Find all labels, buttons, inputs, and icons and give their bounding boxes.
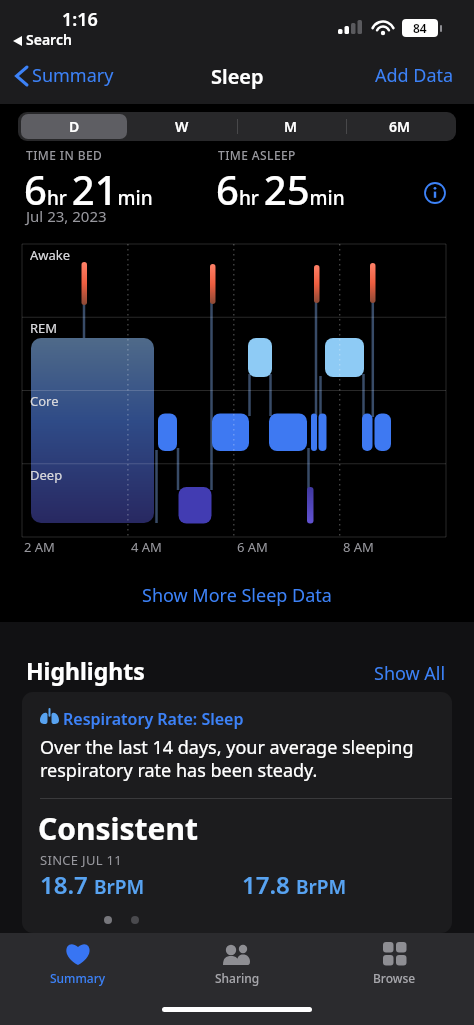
staticText: 17.8 BrPM [242, 868, 347, 901]
button[interactable]: M [237, 114, 344, 139]
staticText: W [175, 117, 189, 136]
staticText: Over the last 14 days, your average slee… [40, 735, 452, 783]
staticText: Deep [30, 466, 63, 484]
staticText: Jul 23, 2023 [26, 206, 107, 226]
staticText: 4 AM [131, 538, 162, 556]
staticText: M [284, 117, 298, 136]
staticText: 2 AM [24, 538, 55, 556]
staticText: Summary [50, 970, 106, 986]
staticText: 6hr 25min [216, 162, 345, 216]
staticText: Sleep [211, 63, 264, 90]
staticText: Add Data [375, 63, 454, 88]
button[interactable]: Show More Sleep Data [0, 583, 474, 608]
button[interactable]: D [21, 114, 127, 139]
button[interactable]: Browse [346, 936, 442, 996]
button[interactable]: Sharing [189, 936, 285, 996]
staticText: Core [30, 392, 59, 410]
button[interactable]: W [129, 114, 235, 139]
staticText: SINCE JUL 11 [40, 851, 122, 869]
button[interactable]: Show All [374, 661, 446, 686]
staticText: 8 AM [343, 538, 374, 556]
staticText: Summary [32, 63, 114, 88]
staticText: Consistent [38, 808, 199, 849]
button[interactable] [424, 182, 446, 204]
staticText: Show More Sleep Data [142, 583, 332, 608]
button[interactable]: 6M [346, 114, 453, 139]
button[interactable]: Summary [32, 63, 114, 88]
staticText: 6 AM [237, 538, 268, 556]
button[interactable] [15, 66, 27, 86]
staticText: Browse [373, 970, 416, 986]
staticText: 84 [413, 20, 427, 36]
staticText: 6hr 21min [24, 162, 153, 216]
button[interactable]: Summary [30, 936, 126, 996]
staticText: Highlights [26, 655, 145, 686]
button[interactable]: Respiratory Rate: Sleep [22, 692, 452, 933]
staticText: 18.7 BrPM [40, 868, 145, 901]
staticText: Respiratory Rate: Sleep [63, 708, 244, 730]
staticText: TIME ASLEEP [218, 147, 296, 163]
button[interactable]: Add Data [375, 63, 454, 88]
staticText: 1:16 [62, 7, 98, 32]
staticText: D [69, 117, 80, 136]
staticText: Search [26, 30, 72, 49]
staticText: Show All [374, 661, 446, 686]
staticText: 6M [389, 117, 411, 136]
staticText: REM [30, 319, 58, 337]
staticText: Sharing [215, 970, 260, 986]
staticText: Awake [30, 246, 71, 264]
staticText: TIME IN BED [26, 147, 103, 163]
